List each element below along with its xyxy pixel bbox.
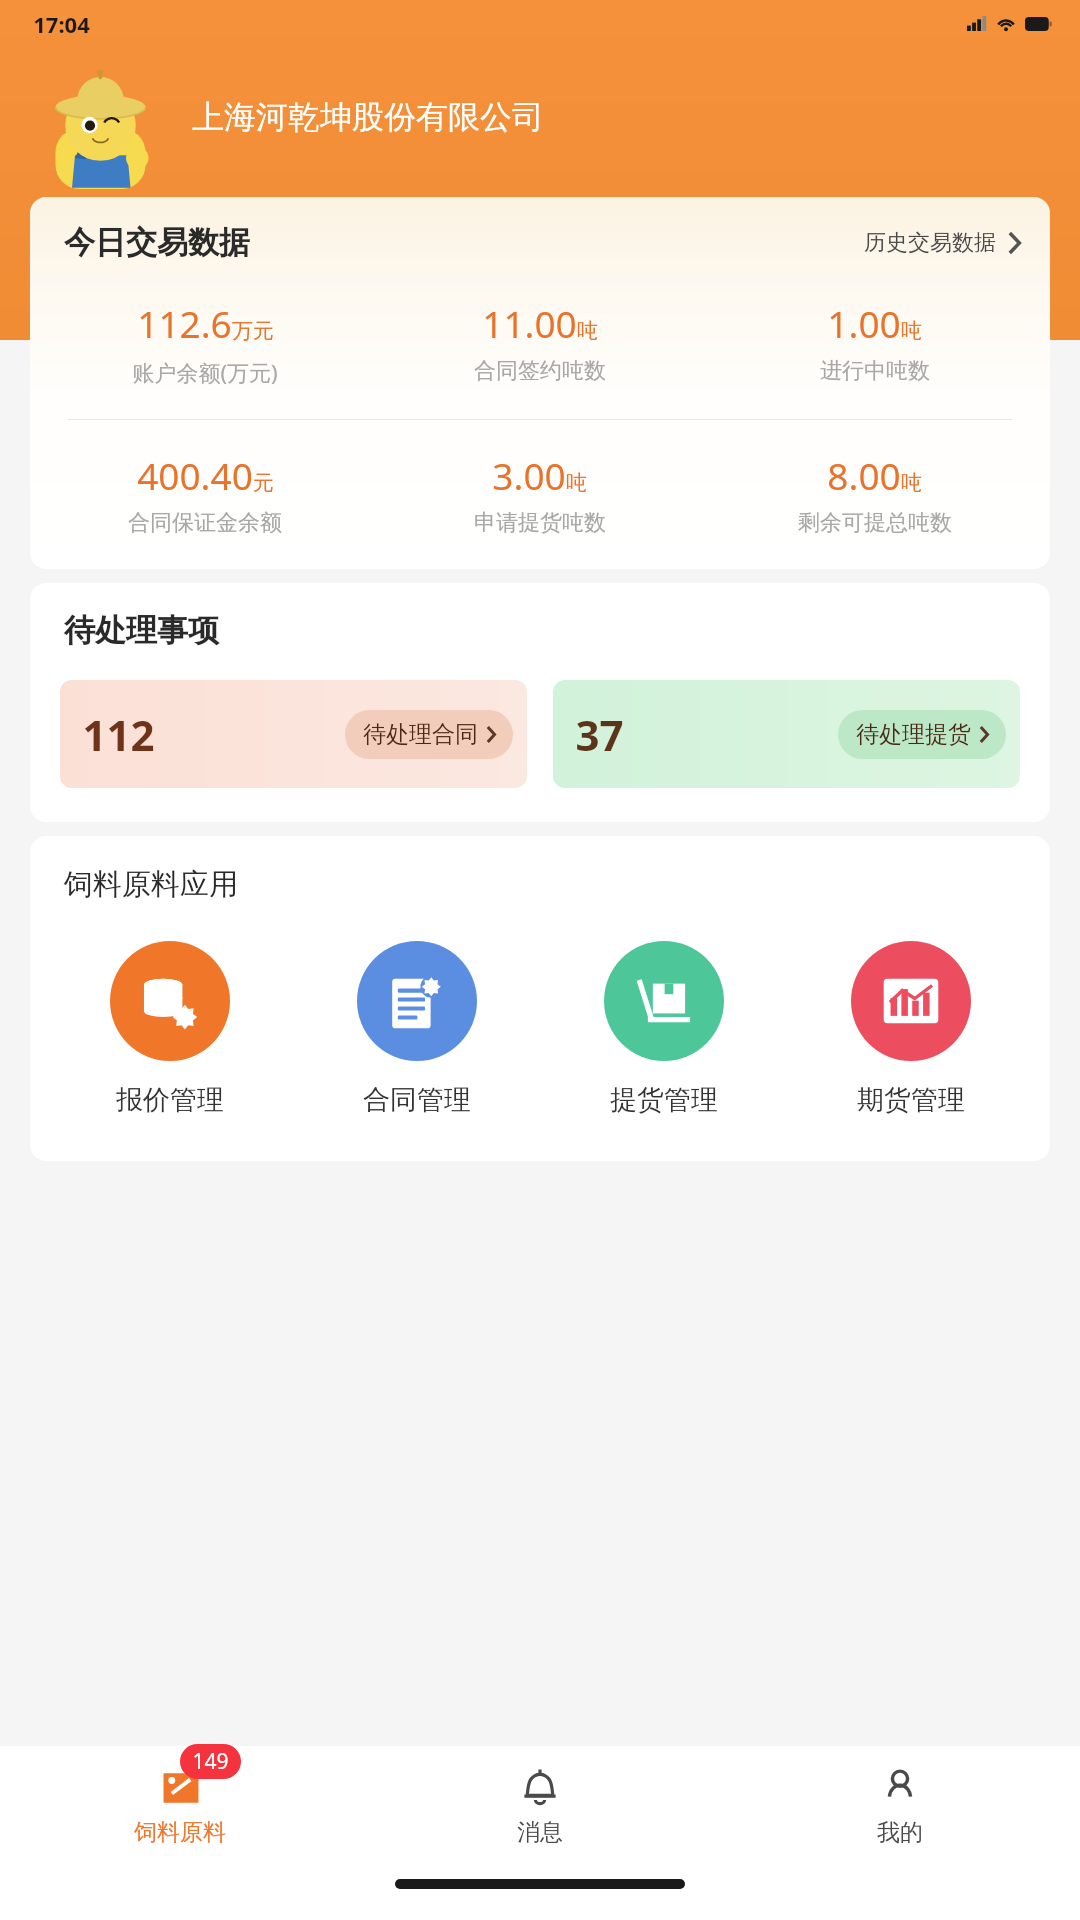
staticText: 我的 (877, 1818, 923, 1847)
staticText: 8.00 (827, 450, 901, 500)
button[interactable]: 1.00 (707, 296, 1042, 387)
button[interactable]: 3.00 (372, 448, 707, 539)
staticText: 17:04 (33, 9, 90, 39)
staticText: 合同管理 (363, 1083, 471, 1117)
staticText: 申请提货吨数 (474, 509, 606, 537)
staticText: 期货管理 (857, 1083, 965, 1117)
staticText: 400.40 (137, 450, 253, 500)
staticText: 剩余可提总吨数 (798, 509, 952, 537)
staticText: 元 (253, 470, 274, 496)
staticText: 饲料原料应用 (64, 866, 238, 903)
staticText: 进行中吨数 (820, 357, 930, 385)
button[interactable]: 400.40 (38, 448, 372, 539)
button[interactable]: 期货管理 (787, 937, 1034, 1121)
staticText: 待处理合同 (363, 720, 478, 749)
staticText: 37 (575, 706, 624, 763)
staticText: 今日交易数据 (64, 223, 250, 262)
staticText: 历史交易数据 (864, 229, 996, 257)
button[interactable]: 提货管理 (540, 937, 787, 1121)
staticText: 待处理事项 (64, 611, 219, 650)
button[interactable]: 合同管理 (293, 937, 540, 1121)
staticText: 11.00 (482, 298, 577, 348)
button[interactable]: 我的 (720, 1746, 1080, 1864)
button[interactable]: 112 (60, 680, 527, 788)
button[interactable]: 消息 (360, 1746, 720, 1864)
staticText: 待处理提货 (856, 720, 971, 749)
staticText: 吨 (577, 318, 598, 344)
button[interactable]: 37 (553, 680, 1020, 788)
staticText: 112.6 (137, 298, 232, 348)
staticText: 饲料原料 (134, 1818, 226, 1847)
staticText: 消息 (517, 1818, 563, 1847)
staticText: 万元 (232, 318, 274, 344)
staticText: 提货管理 (610, 1083, 718, 1117)
button[interactable]: 报价管理 (46, 937, 293, 1121)
staticText: 1.00 (827, 298, 901, 348)
staticText: 149 (192, 1747, 229, 1776)
staticText: 3.00 (492, 450, 566, 500)
staticText: 合同保证金余额 (128, 509, 282, 537)
button[interactable]: 11.00 (372, 296, 707, 387)
staticText: 吨 (901, 470, 922, 496)
staticText: 账户余额(万元) (132, 357, 278, 387)
button[interactable]: 历史交易数据 (860, 225, 1024, 261)
button[interactable]: 149 (0, 1746, 360, 1864)
staticText: 合同签约吨数 (474, 357, 606, 385)
staticText: 报价管理 (116, 1083, 224, 1117)
staticText: 112 (82, 706, 155, 763)
button[interactable]: 112.6 (38, 296, 372, 389)
staticText: 上海河乾坤股份有限公司 (192, 97, 544, 137)
staticText: 吨 (566, 470, 587, 496)
staticText: 吨 (901, 318, 922, 344)
button[interactable]: 8.00 (707, 448, 1042, 539)
